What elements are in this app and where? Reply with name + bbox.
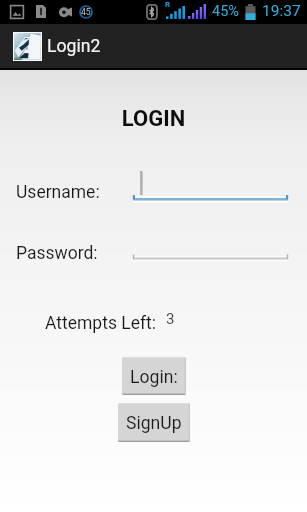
- staticText: 3: [166, 310, 175, 328]
- staticText: Attempts Left:: [45, 313, 157, 334]
- staticText: 45: [81, 7, 91, 17]
- button[interactable]: SignUp: [118, 403, 190, 442]
- staticText: R: [165, 0, 171, 9]
- staticText: 45%: [212, 3, 239, 20]
- staticText: Username:: [16, 182, 100, 203]
- staticText: Login:: [130, 367, 178, 388]
- staticText: 19:37: [262, 2, 301, 20]
- staticText: SignUp: [126, 413, 182, 434]
- staticText: Login2: [47, 36, 101, 57]
- button[interactable]: Login:: [122, 357, 186, 395]
- other: App icon: [13, 32, 42, 61]
- staticText: Password:: [16, 243, 98, 264]
- staticText: LOGIN: [0, 106, 307, 132]
